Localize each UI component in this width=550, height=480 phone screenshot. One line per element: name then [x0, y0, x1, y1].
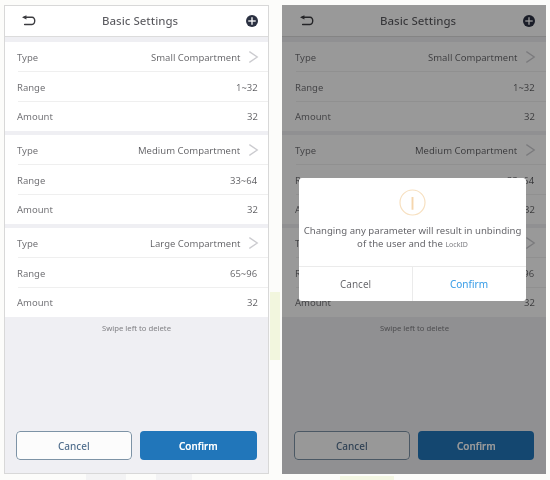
staticText: Confirm	[457, 439, 496, 453]
button[interactable]: Confirm	[140, 431, 257, 460]
staticText: Amount	[17, 110, 53, 123]
button[interactable]: Amount	[282, 195, 546, 224]
button[interactable]: Type	[4, 135, 269, 165]
staticText: 33~64	[230, 174, 258, 187]
staticText: Range	[295, 81, 324, 94]
button[interactable]: Cancel	[299, 267, 412, 301]
staticText: Amount	[295, 110, 331, 123]
staticText: 65~96	[507, 267, 535, 280]
staticText: Type	[295, 237, 317, 250]
staticText: Type	[17, 237, 39, 250]
button[interactable]: Add	[243, 12, 261, 30]
button[interactable]: Add	[520, 12, 538, 30]
button[interactable]: Type	[282, 228, 546, 258]
staticText: 32	[524, 110, 535, 123]
staticText: 65~96	[230, 267, 258, 280]
button[interactable]: Range	[4, 72, 269, 102]
staticText: Large Compartment	[150, 237, 241, 250]
button[interactable]: Amount	[282, 288, 546, 317]
staticText: Amount	[17, 203, 53, 216]
button[interactable]: Range	[282, 258, 546, 288]
button[interactable]: Range	[282, 165, 546, 195]
staticText: 33~64	[507, 174, 535, 187]
staticText: 1~32	[513, 81, 535, 94]
staticText: 32	[247, 296, 258, 309]
staticText: Confirm	[450, 277, 489, 291]
staticText: Confirm	[179, 439, 218, 453]
staticText: Type	[17, 144, 39, 157]
button[interactable]: Confirm	[418, 431, 534, 460]
staticText: Cancel	[340, 277, 372, 291]
staticText: Amount	[17, 296, 53, 309]
button[interactable]: Cancel	[294, 431, 410, 460]
button[interactable]: Type	[282, 135, 546, 165]
button[interactable]: Type	[282, 42, 546, 72]
staticText: Small Compartment	[151, 51, 241, 64]
button[interactable]: Range	[4, 165, 269, 195]
button[interactable]: Amount	[4, 195, 269, 224]
staticText: Range	[295, 267, 324, 280]
staticText: Amount	[295, 203, 331, 216]
button[interactable]: Amount	[4, 102, 269, 131]
button[interactable]: Amount	[282, 102, 546, 131]
button[interactable]: Cancel	[16, 431, 132, 460]
button[interactable]: Confirm	[413, 267, 526, 301]
button[interactable]: Type	[4, 228, 269, 258]
staticText: Type	[295, 51, 317, 64]
staticText: Range	[17, 81, 46, 94]
staticText: 32	[247, 203, 258, 216]
staticText: Swipe left to delete	[380, 323, 449, 333]
staticText: Large Compartment	[427, 237, 518, 250]
button[interactable]: Range	[282, 72, 546, 102]
staticText: Range	[17, 174, 46, 187]
staticText: Amount	[295, 296, 331, 309]
staticText: Cancel	[336, 439, 368, 453]
button[interactable]: Amount	[4, 288, 269, 317]
staticText: Range	[295, 174, 324, 187]
button[interactable]: Range	[4, 258, 269, 288]
button[interactable]: Back	[295, 10, 317, 32]
staticText: 32	[247, 110, 258, 123]
staticText: Medium Compartment	[415, 144, 518, 157]
staticText: Type	[17, 51, 39, 64]
staticText: Type	[295, 144, 317, 157]
staticText: Small Compartment	[428, 51, 518, 64]
staticText: Changing any parameter will result in un…	[302, 224, 523, 250]
staticText: Basic Settings	[102, 13, 179, 29]
staticText: Basic Settings	[380, 13, 457, 29]
staticText: Cancel	[58, 439, 90, 453]
staticText: Medium Compartment	[138, 144, 241, 157]
staticText: Swipe left to delete	[102, 323, 171, 333]
staticText: 1~32	[236, 81, 258, 94]
staticText: 32	[524, 203, 535, 216]
button[interactable]: Back	[17, 10, 39, 32]
staticText: 32	[524, 296, 535, 309]
button[interactable]: Type	[4, 42, 269, 72]
staticText: Range	[17, 267, 46, 280]
